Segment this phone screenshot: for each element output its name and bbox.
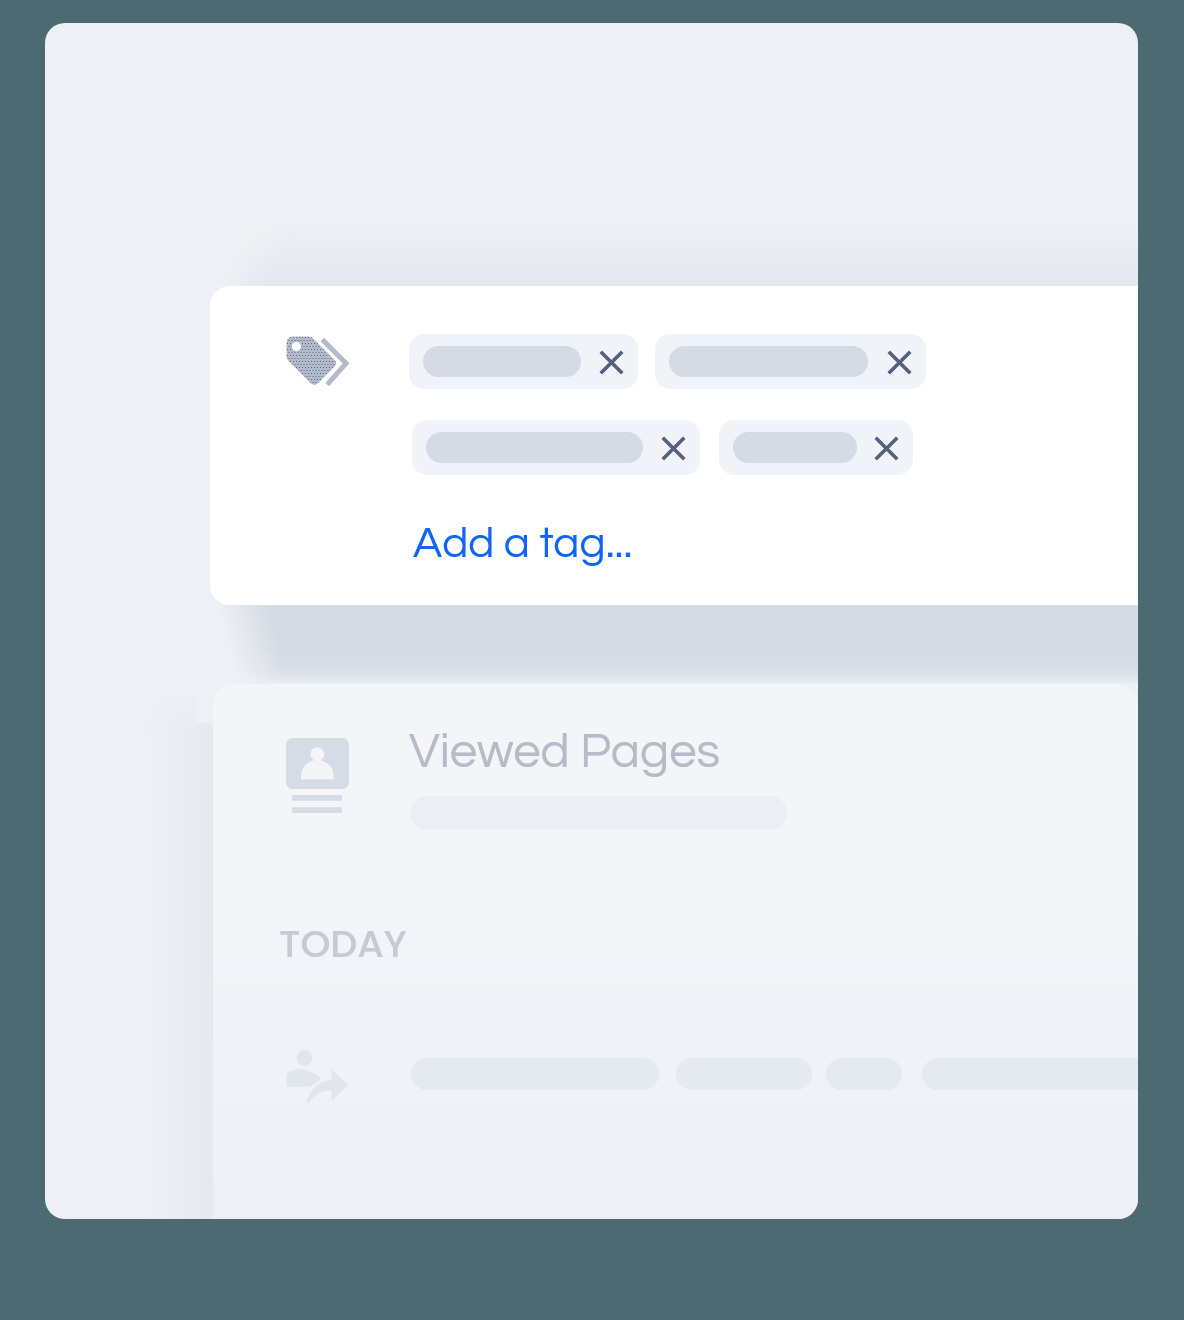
button[interactable]: Remove tag xyxy=(412,420,700,475)
button[interactable]: Remove tag xyxy=(409,334,638,389)
staticText: Add a tag... xyxy=(413,521,633,566)
button[interactable]: Viewed Pages xyxy=(213,684,1138,884)
button[interactable]: Remove tag xyxy=(655,334,926,389)
other: Remove tag xyxy=(889,352,909,372)
other: Remove tag xyxy=(663,438,683,458)
other: Remove tag xyxy=(601,352,621,372)
button[interactable]: Remove tag xyxy=(719,420,913,475)
button[interactable]: Add a tag... xyxy=(413,521,633,566)
staticText: Viewed Pages xyxy=(409,727,721,777)
other: Remove tag xyxy=(876,438,896,458)
staticText: TODAY xyxy=(279,917,407,970)
